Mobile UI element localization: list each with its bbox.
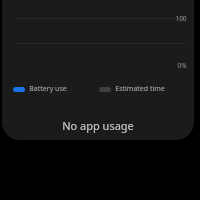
staticText: Estimated time bbox=[115, 84, 165, 94]
staticText: Battery use bbox=[29, 84, 67, 94]
other: Battery use bbox=[13, 87, 25, 92]
staticText: 0% bbox=[177, 61, 187, 70]
staticText: No app usage bbox=[62, 118, 134, 133]
button[interactable]: Estimated time bbox=[98, 82, 166, 96]
other: Estimated time bbox=[99, 87, 111, 92]
staticText: 100 bbox=[175, 14, 187, 23]
button[interactable]: Battery use bbox=[12, 82, 68, 96]
